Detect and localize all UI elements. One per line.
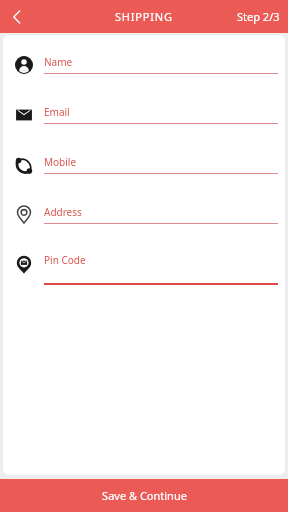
staticText: SHIPPING (115, 9, 173, 24)
button[interactable]: Back (0, 0, 34, 33)
staticText: Mobile (44, 155, 77, 169)
staticText: Email (44, 105, 70, 119)
button[interactable]: Address (3, 203, 285, 237)
staticText: Pin Code (44, 253, 86, 267)
button[interactable]: Save & Continue (0, 479, 288, 512)
button[interactable]: Mobile (3, 153, 285, 187)
staticText: Save & Continue (102, 488, 187, 503)
button[interactable]: Email (3, 103, 285, 137)
button[interactable]: Name (3, 53, 285, 87)
staticText: Name (44, 55, 73, 69)
button[interactable]: Pin Code (3, 253, 285, 287)
staticText: Address (44, 205, 82, 219)
staticText: Step 2/3 (237, 9, 280, 24)
